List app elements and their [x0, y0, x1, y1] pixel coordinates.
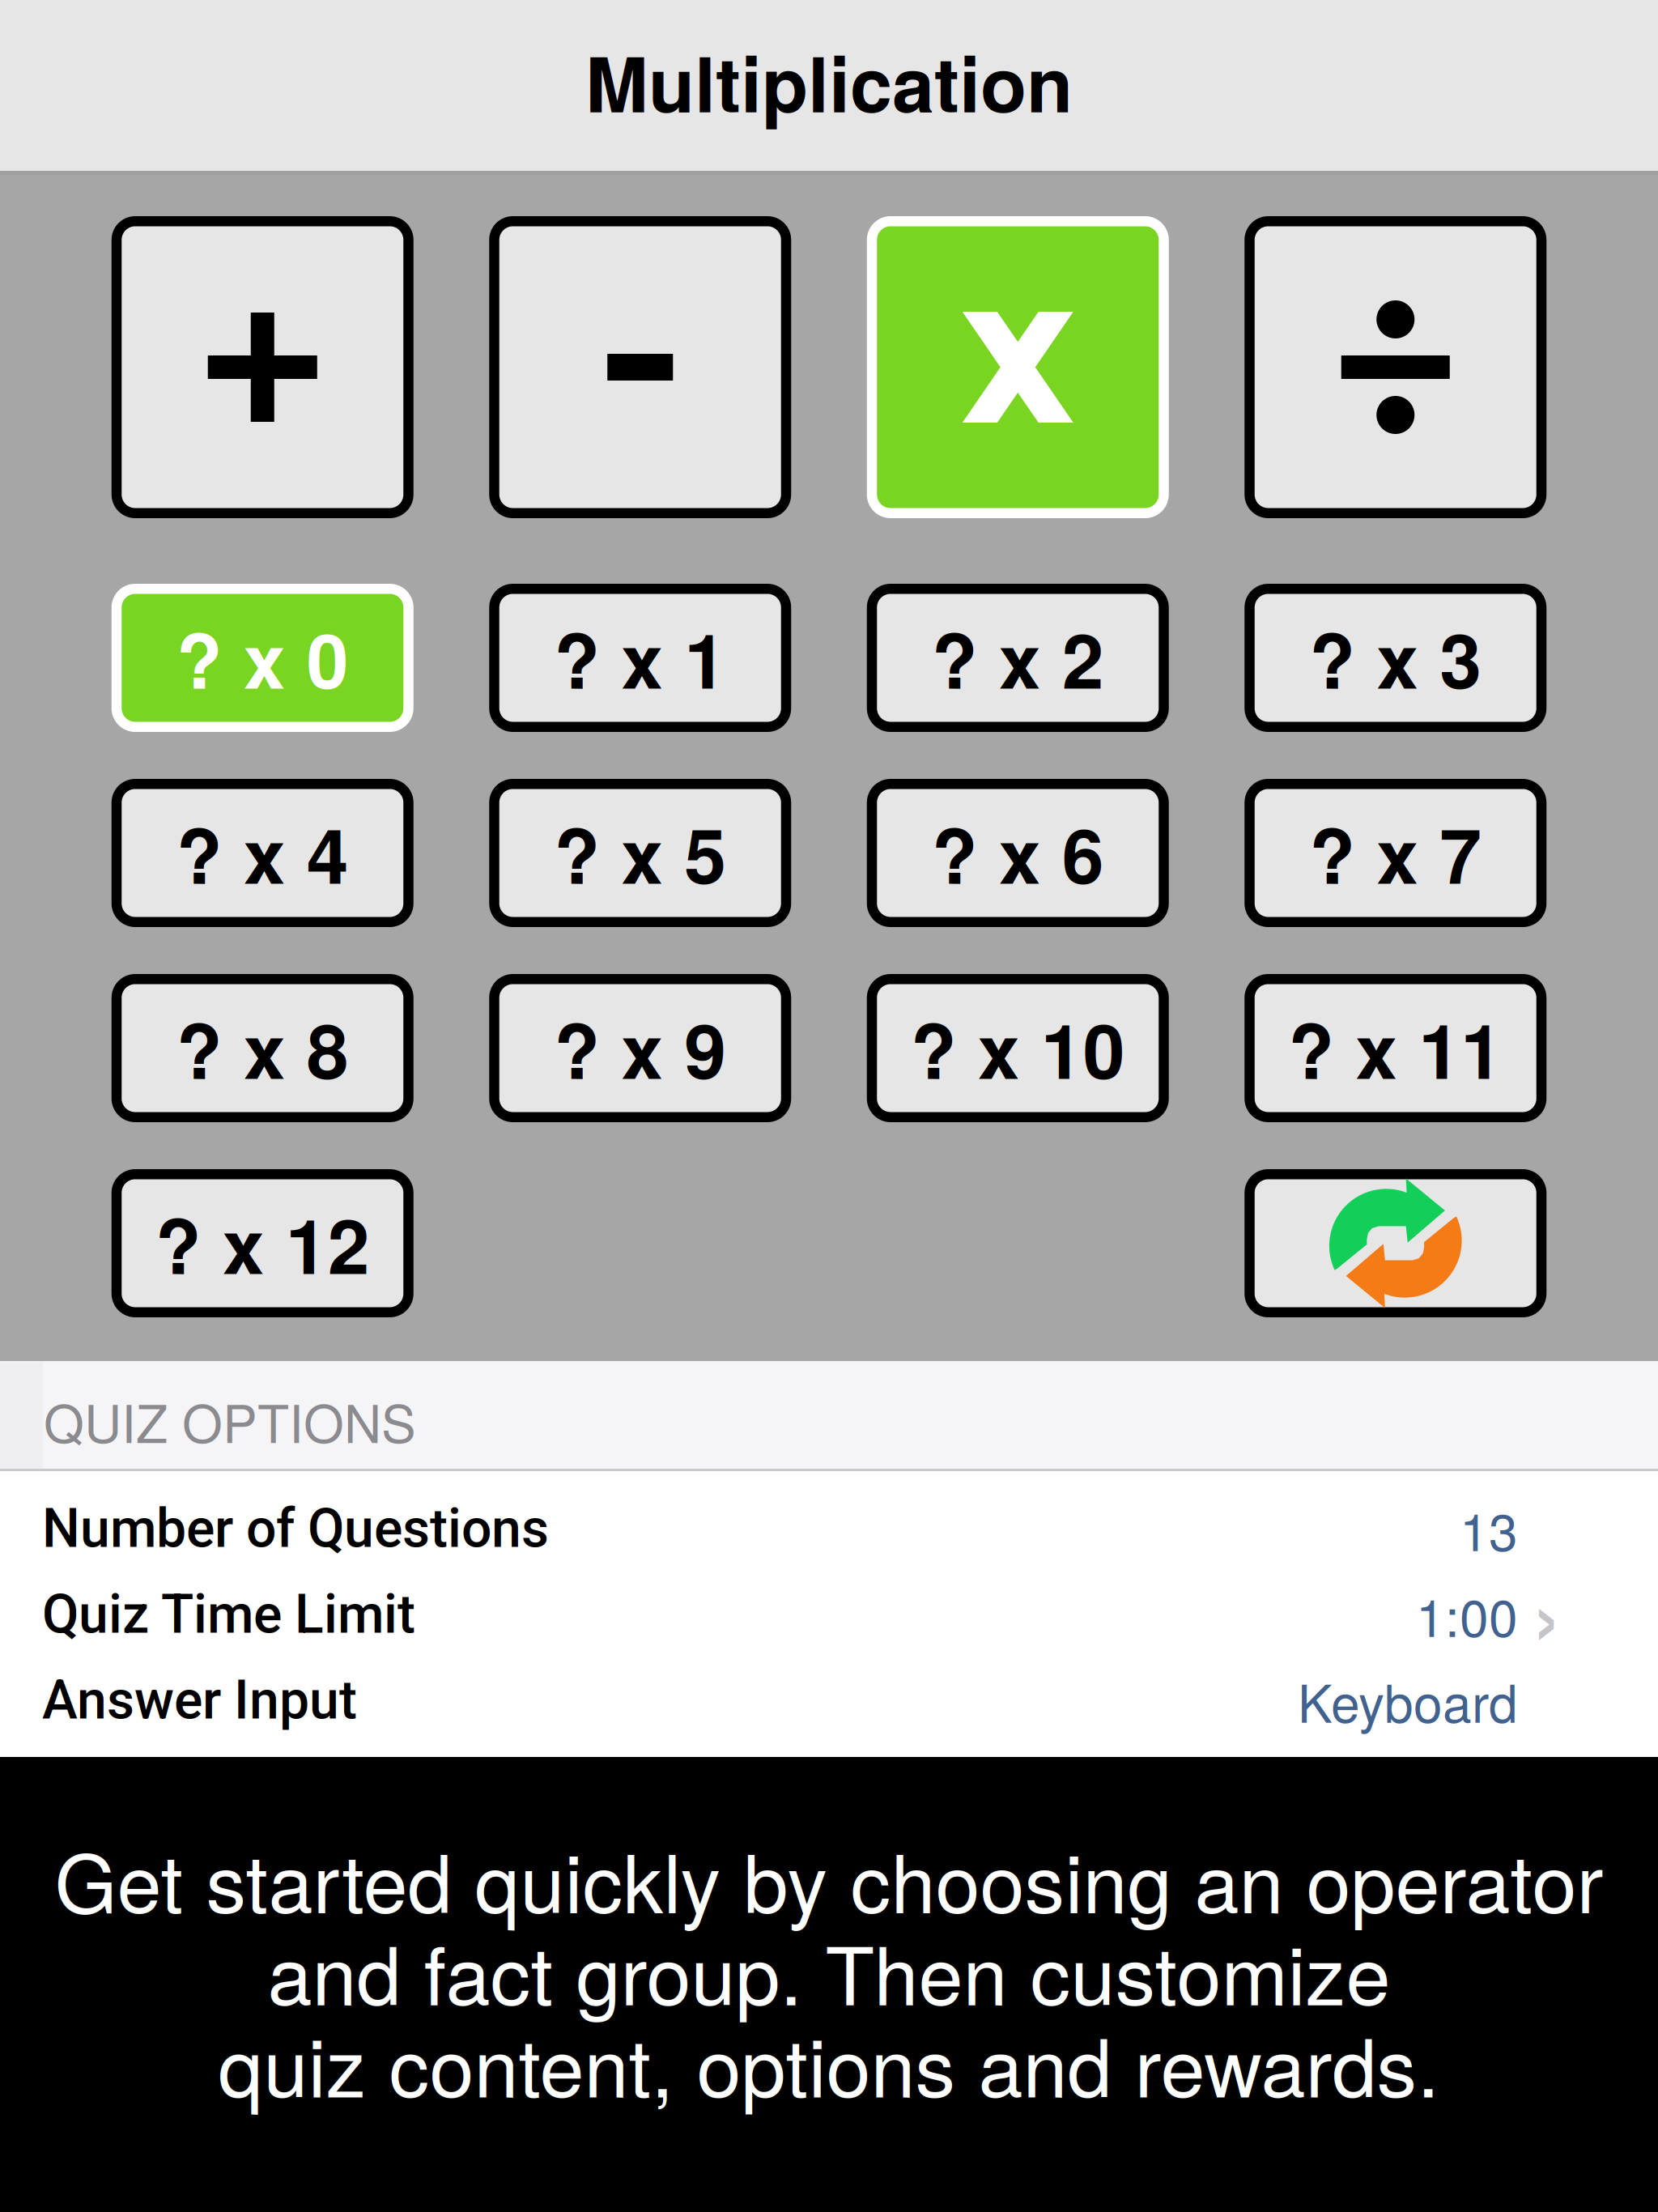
staticText: ? x 10	[911, 994, 1125, 1102]
staticText: Quiz Time Limit	[42, 1583, 415, 1646]
button[interactable]: ? x 1	[489, 584, 791, 732]
staticText: ? x 7	[1309, 799, 1482, 907]
button[interactable]: ? x 9	[489, 974, 791, 1122]
button[interactable]: Subtraction	[489, 216, 791, 518]
staticText: ? x 11	[1288, 994, 1503, 1102]
staticText: ? x 6	[932, 799, 1104, 907]
staticText: and fact group. Then customize	[268, 1913, 1390, 2028]
staticText: Keyboard	[1298, 1663, 1518, 1737]
staticText: ? x 4	[176, 799, 349, 907]
button[interactable]: ? x 0	[112, 584, 414, 732]
staticText: 13	[1460, 1492, 1518, 1566]
staticText: 1:00	[1416, 1577, 1518, 1652]
staticText: Number of Questions	[42, 1497, 549, 1560]
staticText: Answer Input	[42, 1669, 357, 1732]
button[interactable]: Quiz Time Limit	[0, 1572, 1658, 1657]
button[interactable]: ? x 3	[1244, 584, 1546, 732]
button[interactable]: ? x 2	[867, 584, 1169, 732]
staticText: ? x 0	[176, 604, 349, 712]
button[interactable]: Answer Input	[0, 1657, 1658, 1743]
button[interactable]: Multiplication	[867, 216, 1169, 518]
button[interactable]: Number of Questions	[0, 1486, 1658, 1572]
button[interactable]: ? x 11	[1244, 974, 1546, 1122]
button[interactable]: ? x 8	[112, 974, 414, 1122]
staticText: Multiplication	[585, 27, 1073, 136]
button[interactable]: Shuffle fact group	[1244, 1169, 1546, 1317]
button[interactable]: Division	[1244, 216, 1546, 518]
staticText: quiz content, options and rewards.	[218, 2005, 1440, 2120]
staticText: QUIZ OPTIONS	[44, 1383, 416, 1458]
staticText: ? x 9	[554, 994, 726, 1102]
staticText: ›	[1531, 1541, 1562, 1678]
button[interactable]: ? x 10	[867, 974, 1169, 1122]
staticText: ? x 1	[554, 604, 726, 712]
button[interactable]: ? x 4	[112, 779, 414, 927]
button[interactable]: Addition	[112, 216, 414, 518]
button[interactable]: ? x 6	[867, 779, 1169, 927]
staticText: ? x 8	[176, 994, 349, 1102]
staticText: ? x 5	[554, 799, 726, 907]
button[interactable]: ? x 7	[1244, 779, 1546, 927]
button[interactable]: ? x 12	[112, 1169, 414, 1317]
staticText: ? x 12	[155, 1189, 370, 1297]
staticText: Get started quickly by choosing an opera…	[55, 1821, 1603, 1936]
button[interactable]: ? x 5	[489, 779, 791, 927]
staticText: ? x 3	[1309, 604, 1482, 712]
staticText: ? x 2	[932, 604, 1104, 712]
